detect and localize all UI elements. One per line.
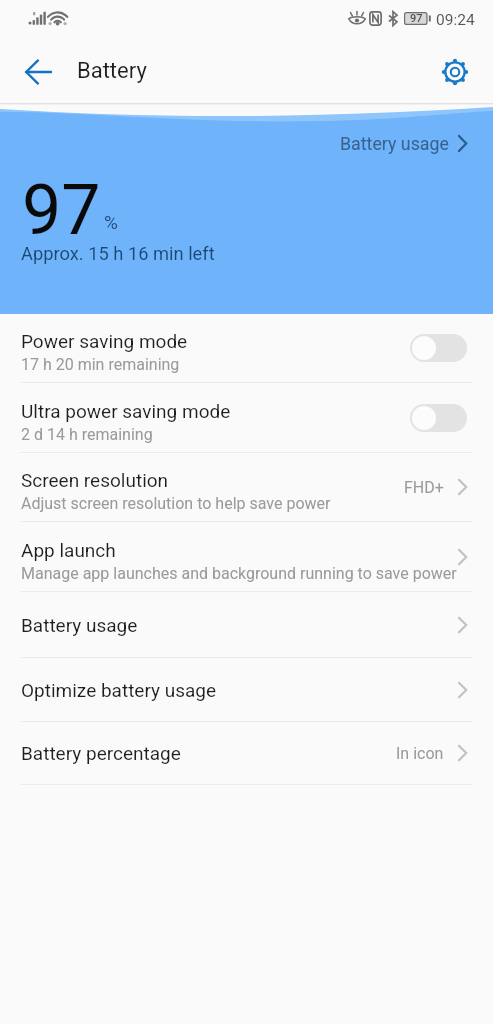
staticText: Battery usage xyxy=(340,133,449,154)
staticText: 2 d 14 h remaining xyxy=(21,425,153,444)
staticText: Optimize battery usage xyxy=(21,679,217,701)
staticText: App launch xyxy=(21,539,116,561)
staticText: Battery percentage xyxy=(21,742,181,764)
button[interactable]: Back xyxy=(10,44,66,100)
button[interactable]: Battery usage xyxy=(340,133,468,154)
button[interactable]: App launch xyxy=(0,522,493,591)
button[interactable]: Power saving mode xyxy=(0,314,493,382)
staticText: Manage app launches and background runni… xyxy=(21,564,457,583)
staticText: 97 xyxy=(410,12,423,25)
button[interactable]: Screen resolution xyxy=(0,453,493,521)
button[interactable]: Toggle xyxy=(410,334,467,362)
staticText: Screen resolution xyxy=(21,469,169,491)
button[interactable]: Settings xyxy=(432,49,478,95)
staticText: Ultra power saving mode xyxy=(21,400,231,422)
staticText: Battery usage xyxy=(21,614,138,636)
button[interactable]: Battery percentage xyxy=(0,722,493,784)
staticText: 17 h 20 min remaining xyxy=(21,355,180,374)
staticText: In icon xyxy=(396,744,444,763)
button[interactable]: Ultra power saving mode xyxy=(0,383,493,452)
staticText: FHD+ xyxy=(404,478,444,497)
staticText: % xyxy=(104,211,118,233)
staticText: Power saving mode xyxy=(21,330,188,352)
staticText: 97 xyxy=(22,169,101,251)
button[interactable]: Optimize battery usage xyxy=(0,658,493,721)
staticText: Approx. 15 h 16 min left xyxy=(21,243,215,264)
button[interactable]: Toggle xyxy=(410,404,467,432)
button[interactable]: Battery usage xyxy=(0,592,493,657)
staticText: Battery xyxy=(77,58,147,84)
staticText: Adjust screen resolution to help save po… xyxy=(21,494,331,513)
staticText: 09:24 xyxy=(436,11,475,29)
